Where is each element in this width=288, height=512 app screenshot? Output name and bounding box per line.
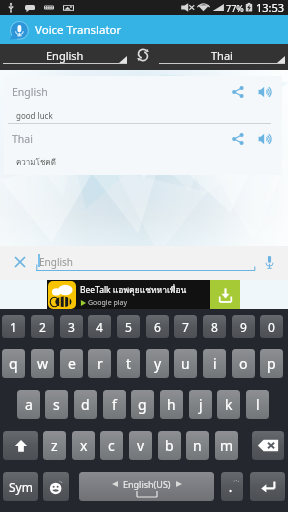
- button[interactable]: Shift: [3, 431, 38, 460]
- staticText: e: [68, 354, 76, 373]
- staticText: good luck: [16, 110, 53, 121]
- button[interactable]: y: [146, 349, 169, 378]
- button[interactable]: i: [203, 349, 226, 378]
- staticText: z: [51, 436, 58, 455]
- button[interactable]: 5: [117, 315, 140, 338]
- button[interactable]: English: [36, 250, 256, 271]
- staticText: English: [12, 85, 48, 99]
- button[interactable]: k: [217, 390, 240, 419]
- staticText: 7: [182, 319, 189, 335]
- button[interactable]: Thai: [159, 44, 285, 70]
- staticText: English: [46, 48, 84, 63]
- button[interactable]: Period: [221, 472, 243, 501]
- staticText: l: [256, 395, 260, 414]
- staticText: y: [154, 354, 162, 373]
- button[interactable]: English(US): [79, 472, 214, 501]
- staticText: 77%: [226, 2, 244, 14]
- button[interactable]: Clear text: [7, 249, 32, 274]
- staticText: x: [80, 436, 88, 455]
- staticText: ความโชคดี: [16, 156, 56, 169]
- button[interactable]: 4: [88, 315, 111, 338]
- button[interactable]: c: [100, 431, 123, 460]
- staticText: d: [81, 395, 90, 414]
- button[interactable]: Enter: [250, 472, 285, 501]
- staticText: b: [165, 436, 174, 455]
- staticText: r: [97, 354, 103, 373]
- button[interactable]: Speak: [253, 80, 276, 103]
- staticText: f: [112, 395, 117, 414]
- button[interactable]: x: [72, 431, 95, 460]
- staticText: English(US): [123, 478, 171, 490]
- button[interactable]: 3: [60, 315, 83, 338]
- button[interactable]: f: [103, 390, 126, 419]
- button[interactable]: Voice input: [257, 249, 282, 274]
- button[interactable]: Backspace: [252, 431, 284, 460]
- button[interactable]: Swap languages: [129, 44, 157, 70]
- button[interactable]: l: [246, 390, 269, 419]
- button[interactable]: 6: [146, 315, 169, 338]
- staticText: k: [225, 395, 233, 414]
- staticText: p: [267, 354, 276, 373]
- button[interactable]: j: [189, 390, 212, 419]
- button[interactable]: n: [186, 431, 209, 460]
- button[interactable]: Voice Translator: [0, 15, 288, 44]
- staticText: q: [9, 354, 18, 373]
- button[interactable]: b: [158, 431, 181, 460]
- staticText: 1: [10, 319, 17, 335]
- button[interactable]: q: [2, 349, 25, 378]
- button[interactable]: h: [160, 390, 183, 419]
- button[interactable]: t: [117, 349, 140, 378]
- button[interactable]: Sym: [3, 472, 38, 501]
- staticText: 3: [68, 319, 75, 335]
- staticText: i: [213, 354, 217, 373]
- button[interactable]: English: [3, 44, 127, 70]
- staticText: 5: [125, 319, 132, 335]
- staticText: m: [220, 436, 234, 455]
- button[interactable]: w: [31, 349, 54, 378]
- staticText: English: [39, 255, 74, 269]
- button[interactable]: g: [131, 390, 154, 419]
- button[interactable]: 2: [31, 315, 54, 338]
- staticText: n: [193, 436, 202, 455]
- button[interactable]: z: [43, 431, 66, 460]
- button[interactable]: p: [260, 349, 283, 378]
- staticText: 4: [96, 319, 103, 335]
- staticText: j: [199, 395, 203, 414]
- button[interactable]: r: [88, 349, 111, 378]
- button[interactable]: Install: [210, 280, 240, 310]
- button[interactable]: u: [174, 349, 197, 378]
- staticText: a: [25, 395, 33, 414]
- button[interactable]: Speak: [253, 127, 276, 150]
- staticText: v: [137, 436, 145, 455]
- button[interactable]: 9: [232, 315, 255, 338]
- staticText: h: [167, 395, 176, 414]
- staticText: 8: [211, 319, 218, 335]
- staticText: w: [37, 354, 49, 373]
- staticText: g: [138, 395, 147, 414]
- button[interactable]: d: [74, 390, 97, 419]
- staticText: Sym: [9, 479, 33, 495]
- staticText: 13:53: [256, 0, 285, 15]
- staticText: Thai: [211, 48, 233, 63]
- staticText: o: [239, 354, 248, 373]
- staticText: 9: [240, 319, 247, 335]
- button[interactable]: m: [215, 431, 238, 460]
- button[interactable]: 1: [2, 315, 25, 338]
- staticText: Google play: [88, 298, 128, 308]
- button[interactable]: s: [45, 390, 68, 419]
- staticText: 0: [268, 319, 275, 335]
- button[interactable]: BeeTalk แอพคุยแชทหาเพื่อน: [47, 280, 240, 310]
- button[interactable]: 8: [203, 315, 226, 338]
- button[interactable]: Emoji: [43, 472, 69, 501]
- button[interactable]: o: [232, 349, 255, 378]
- staticText: t: [126, 354, 132, 373]
- button[interactable]: Share: [226, 127, 249, 150]
- button[interactable]: a: [17, 390, 40, 419]
- button[interactable]: Share: [226, 80, 249, 103]
- button[interactable]: v: [129, 431, 152, 460]
- button[interactable]: 7: [174, 315, 197, 338]
- button[interactable]: e: [60, 349, 83, 378]
- staticText: c: [108, 436, 115, 455]
- staticText: 6: [154, 319, 161, 335]
- button[interactable]: 0: [260, 315, 283, 338]
